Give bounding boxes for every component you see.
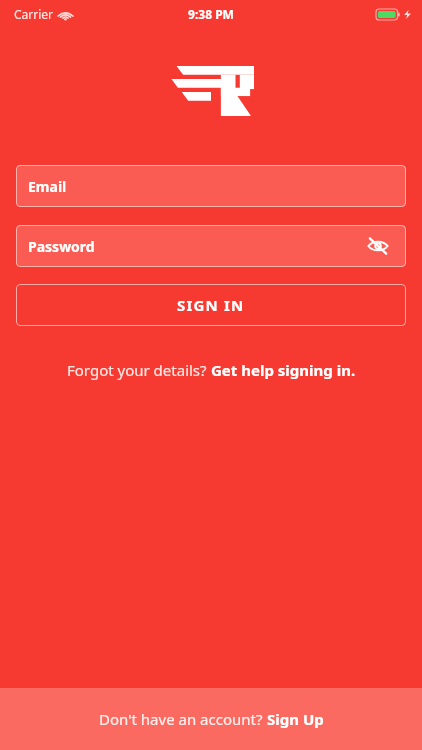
staticText: Sign Up (267, 709, 324, 729)
button[interactable]: SIGN IN (16, 284, 406, 326)
staticText: Password (28, 237, 95, 256)
staticText: Forgot your details? (67, 360, 211, 380)
staticText: Carrier (14, 6, 54, 22)
staticText: 9:38 PM (188, 6, 234, 22)
button[interactable]: Password (16, 225, 406, 267)
button[interactable]: Forgot your details? (0, 356, 422, 384)
staticText: Email (28, 177, 67, 196)
button[interactable]: Email (16, 165, 406, 207)
button[interactable]: Toggle password visibility (364, 232, 392, 260)
staticText: Get help signing in. (211, 360, 356, 380)
staticText: SIGN IN (177, 295, 245, 315)
staticText: Don't have an account? (99, 709, 267, 729)
button[interactable]: Don't have an account? (0, 688, 422, 750)
